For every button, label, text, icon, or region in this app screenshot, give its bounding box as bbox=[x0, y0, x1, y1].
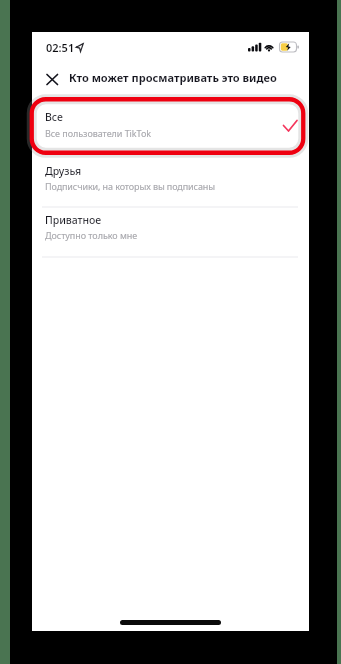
button[interactable]: Все bbox=[32, 106, 309, 156]
staticText: Доступно только мне bbox=[45, 229, 138, 241]
staticText: Все bbox=[45, 110, 63, 124]
staticText: Друзья bbox=[45, 164, 82, 178]
staticText: Подписчики, на которых вы подписаны bbox=[45, 180, 215, 192]
button[interactable] bbox=[40, 68, 66, 92]
staticText: Приватное bbox=[45, 213, 102, 227]
staticText: Кто может просматривать это видео bbox=[69, 70, 277, 85]
staticText: 02:51 bbox=[46, 40, 75, 55]
button[interactable]: Друзья bbox=[32, 156, 309, 206]
staticText: Все пользователи TikTok bbox=[45, 127, 152, 139]
button[interactable]: Приватное bbox=[32, 207, 309, 256]
